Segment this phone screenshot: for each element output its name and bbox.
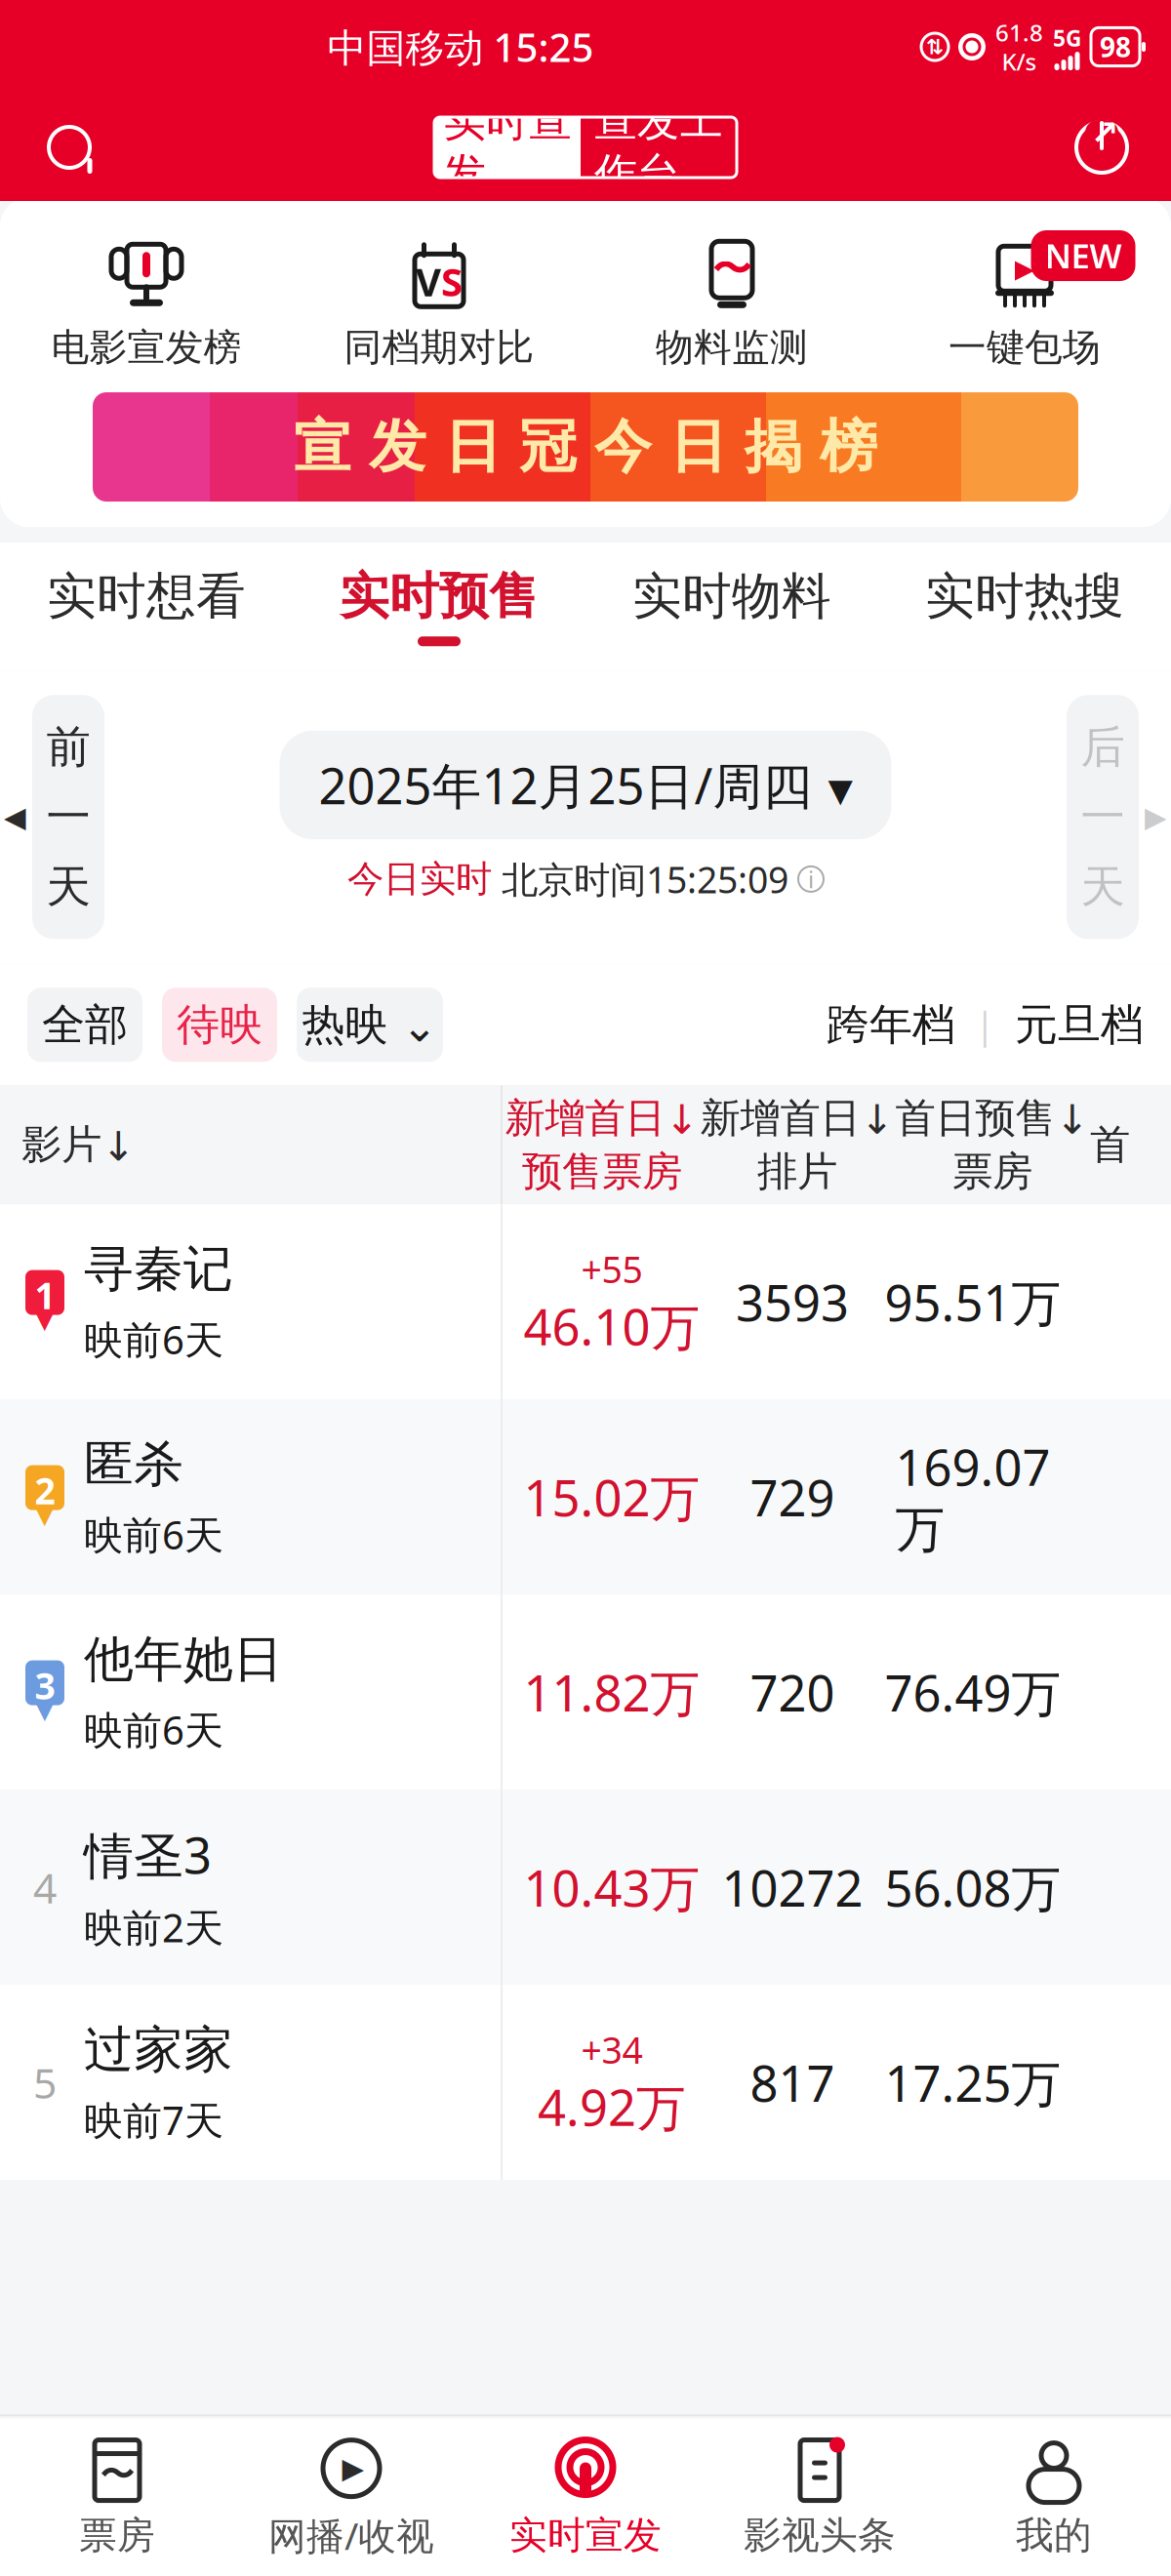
staticText: 待映 [177, 998, 262, 1051]
staticText: 映前7天 [84, 2094, 223, 2146]
staticText: 网播/收视 [268, 2510, 434, 2560]
staticText: +34 [581, 2025, 643, 2074]
button[interactable]: 跨年档 [827, 998, 955, 1051]
staticText: 天 [46, 860, 90, 914]
staticText: 实时宣发 [509, 2512, 662, 2559]
staticText: 天 [1081, 860, 1125, 914]
staticText: 预售票房 [522, 1147, 682, 1196]
button[interactable]: 实时想看 [0, 543, 293, 670]
staticText: 匿杀 [84, 1434, 183, 1495]
staticText: 宣发工作台 [594, 95, 723, 200]
button[interactable]: 实时预售 [293, 543, 585, 670]
staticText: 实时预售 [340, 566, 539, 627]
staticText: 实时宣发 [443, 95, 572, 200]
staticText: NEW [1045, 233, 1122, 278]
staticText: 〜 [712, 246, 751, 294]
staticText: 排片 [757, 1147, 837, 1196]
staticText: ▶ [1014, 254, 1035, 283]
staticText: 新增首日↓ [505, 1093, 699, 1143]
button[interactable]: 宣 发 日 冠 今 日 揭 榜 [65, 392, 1106, 502]
staticText: ▶ [1145, 801, 1167, 833]
button[interactable]: 后 [1067, 695, 1167, 939]
button[interactable]: 全部 [27, 988, 142, 1062]
button[interactable]: 分享 [1058, 103, 1146, 191]
button[interactable]: ▶ [234, 2436, 468, 2560]
staticText: 4.92万 [538, 2074, 686, 2140]
button[interactable]: 实时宣发 [434, 117, 581, 178]
staticText: 98 [1100, 29, 1131, 65]
staticText: 3 [35, 1661, 55, 1710]
button[interactable]: ▼ [0, 1595, 1171, 1790]
staticText: 寻秦记 [84, 1239, 233, 1300]
button[interactable]: 新增首日↓ [505, 1093, 700, 1196]
staticText: 物料监测 [656, 324, 808, 371]
button[interactable]: ▼ [0, 1204, 1171, 1400]
button[interactable]: 〜 [0, 2438, 234, 2559]
button[interactable]: 首日预售↓ [895, 1093, 1090, 1196]
button[interactable]: 待映 [162, 988, 277, 1062]
staticText: 5G [1053, 23, 1081, 53]
staticText: 76.49万 [885, 1659, 1061, 1725]
staticText: 元旦档 [1015, 998, 1144, 1051]
staticText: 1 [35, 1271, 55, 1319]
staticText: 跨年档 [827, 998, 955, 1051]
staticText: 中国移动 15:25 [327, 21, 594, 73]
button[interactable]: 热映 ⌄ [297, 988, 443, 1062]
staticText: ▼ [34, 1301, 56, 1334]
staticText: 169.07万 [895, 1434, 1050, 1560]
staticText: 映前6天 [84, 1703, 223, 1755]
staticText: 前 [46, 720, 90, 774]
staticText: ↗ [1090, 113, 1119, 152]
staticText: K/s [1002, 46, 1037, 77]
button[interactable]: V [293, 242, 585, 371]
staticText: 过家家 [84, 2019, 233, 2080]
staticText: 影片↓ [21, 1120, 136, 1170]
staticText: 729 [750, 1464, 835, 1530]
button[interactable]: 实时物料 [585, 543, 878, 670]
button[interactable]: 宣发工作台 [581, 117, 737, 178]
button[interactable]: 影片↓ [21, 1120, 136, 1170]
staticText: 实时物料 [632, 566, 831, 627]
button[interactable]: 实时宣发 [468, 2438, 703, 2559]
button[interactable]: ▼ [0, 1400, 1171, 1595]
staticText: 映前6天 [84, 1508, 223, 1560]
staticText: 全部 [42, 998, 128, 1051]
staticText: 4 [33, 1860, 57, 1915]
button[interactable]: 元旦档 [1015, 998, 1144, 1051]
staticText: 影视头条 [744, 2512, 896, 2559]
button[interactable]: 〜 [585, 242, 878, 371]
button[interactable]: ▶ [878, 230, 1171, 382]
staticText: 热映 ⌄ [302, 998, 438, 1051]
staticText: 11.82万 [524, 1659, 700, 1725]
staticText: 95.51万 [885, 1269, 1061, 1335]
staticText: ▶ [342, 2452, 364, 2485]
button[interactable]: ◀ [4, 695, 104, 939]
staticText: 61.8 [995, 17, 1043, 48]
staticText: 宣 发 日 冠 今 日 揭 榜 [294, 412, 877, 482]
staticText: ◀ [4, 801, 26, 833]
staticText: 15.02万 [524, 1464, 700, 1530]
button[interactable]: 实时热搜 [878, 543, 1171, 670]
staticText: 3593 [736, 1269, 849, 1335]
staticText: V [416, 255, 441, 307]
staticText: 720 [750, 1659, 835, 1725]
staticText: 他年她日 [84, 1629, 283, 1690]
button[interactable]: 2025年12月25日/周四 ▾ [280, 731, 891, 839]
staticText: S [441, 255, 463, 307]
button[interactable]: 我的 [937, 2438, 1171, 2559]
staticText: 一键包场 [949, 324, 1101, 371]
staticText: 北京时间15:25:09 [502, 855, 788, 903]
staticText: ▼ [34, 1692, 56, 1724]
button[interactable]: 4 [0, 1790, 1171, 1985]
button[interactable]: 5 [0, 1985, 1171, 2180]
button[interactable]: 新增首日↓ [700, 1093, 895, 1196]
staticText: 一 [1081, 790, 1125, 844]
staticText: 我的 [1016, 2512, 1092, 2559]
staticText: 实时想看 [47, 566, 246, 627]
button[interactable]: 影视头条 [703, 2438, 937, 2559]
staticText: 新增首日↓ [700, 1093, 894, 1143]
button[interactable]: 电影宣发榜 [0, 242, 293, 371]
button[interactable]: 搜索 [25, 103, 113, 191]
staticText: 同档期对比 [344, 324, 534, 371]
staticText: 实时热搜 [925, 566, 1124, 627]
